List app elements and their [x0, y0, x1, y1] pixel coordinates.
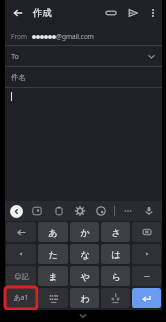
staticText: 件名 — [11, 73, 26, 82]
button[interactable]: さ — [101, 222, 130, 242]
staticText: か — [80, 227, 90, 238]
staticText: あa1 — [13, 293, 29, 303]
button[interactable]: Move right — [132, 244, 161, 264]
button[interactable]: Long vowel — [132, 266, 161, 286]
staticText: や — [80, 271, 90, 282]
staticText: ら — [111, 271, 121, 282]
button[interactable]: Punctuation — [101, 288, 130, 308]
staticText: @gmail.com — [56, 32, 94, 41]
button[interactable]: ☺記 — [6, 266, 36, 286]
button[interactable]: な — [70, 244, 99, 264]
button[interactable]: Stickers — [29, 203, 45, 219]
button[interactable]: More options — [144, 4, 162, 22]
button[interactable]: あ — [38, 222, 68, 242]
button[interactable]: Delete — [132, 222, 161, 242]
button[interactable]: To — [5, 46, 162, 67]
button[interactable]: Back — [5, 0, 31, 26]
staticText: ま — [48, 271, 58, 282]
button[interactable]: わ — [70, 288, 99, 308]
button[interactable]: は — [101, 244, 130, 264]
button[interactable]: Send — [122, 2, 144, 24]
staticText: た — [48, 249, 58, 260]
staticText: な — [80, 249, 90, 260]
button[interactable]: More — [120, 203, 136, 219]
button[interactable]: Enter — [132, 288, 161, 308]
button[interactable]: Settings — [72, 203, 88, 219]
staticText: わ — [80, 293, 90, 304]
staticText: あ — [48, 227, 58, 238]
button[interactable]: Voice input — [141, 203, 157, 219]
button[interactable]: あa1 — [6, 288, 36, 308]
button[interactable] — [5, 88, 162, 201]
button[interactable]: や — [70, 266, 99, 286]
button[interactable]: 件名 — [5, 67, 162, 88]
button[interactable]: ら — [101, 266, 130, 286]
button[interactable]: か — [70, 222, 99, 242]
button[interactable]: Undo — [6, 222, 36, 242]
button[interactable]: Attach file — [100, 2, 122, 24]
button[interactable]: Move left — [6, 244, 36, 264]
button[interactable]: Emoticons — [38, 288, 68, 308]
staticText: は — [111, 249, 121, 260]
button[interactable]: た — [38, 244, 68, 264]
staticText: ☺記 — [14, 272, 29, 281]
button[interactable]: Clipboard — [51, 203, 67, 219]
button[interactable]: Theme — [93, 203, 109, 219]
button[interactable]: ま — [38, 266, 68, 286]
button[interactable]: Collapse toolbar — [10, 205, 23, 218]
staticText: From — [11, 32, 27, 41]
staticText: 作成 — [33, 7, 52, 19]
staticText: To — [11, 52, 19, 62]
staticText: さ — [111, 227, 121, 238]
